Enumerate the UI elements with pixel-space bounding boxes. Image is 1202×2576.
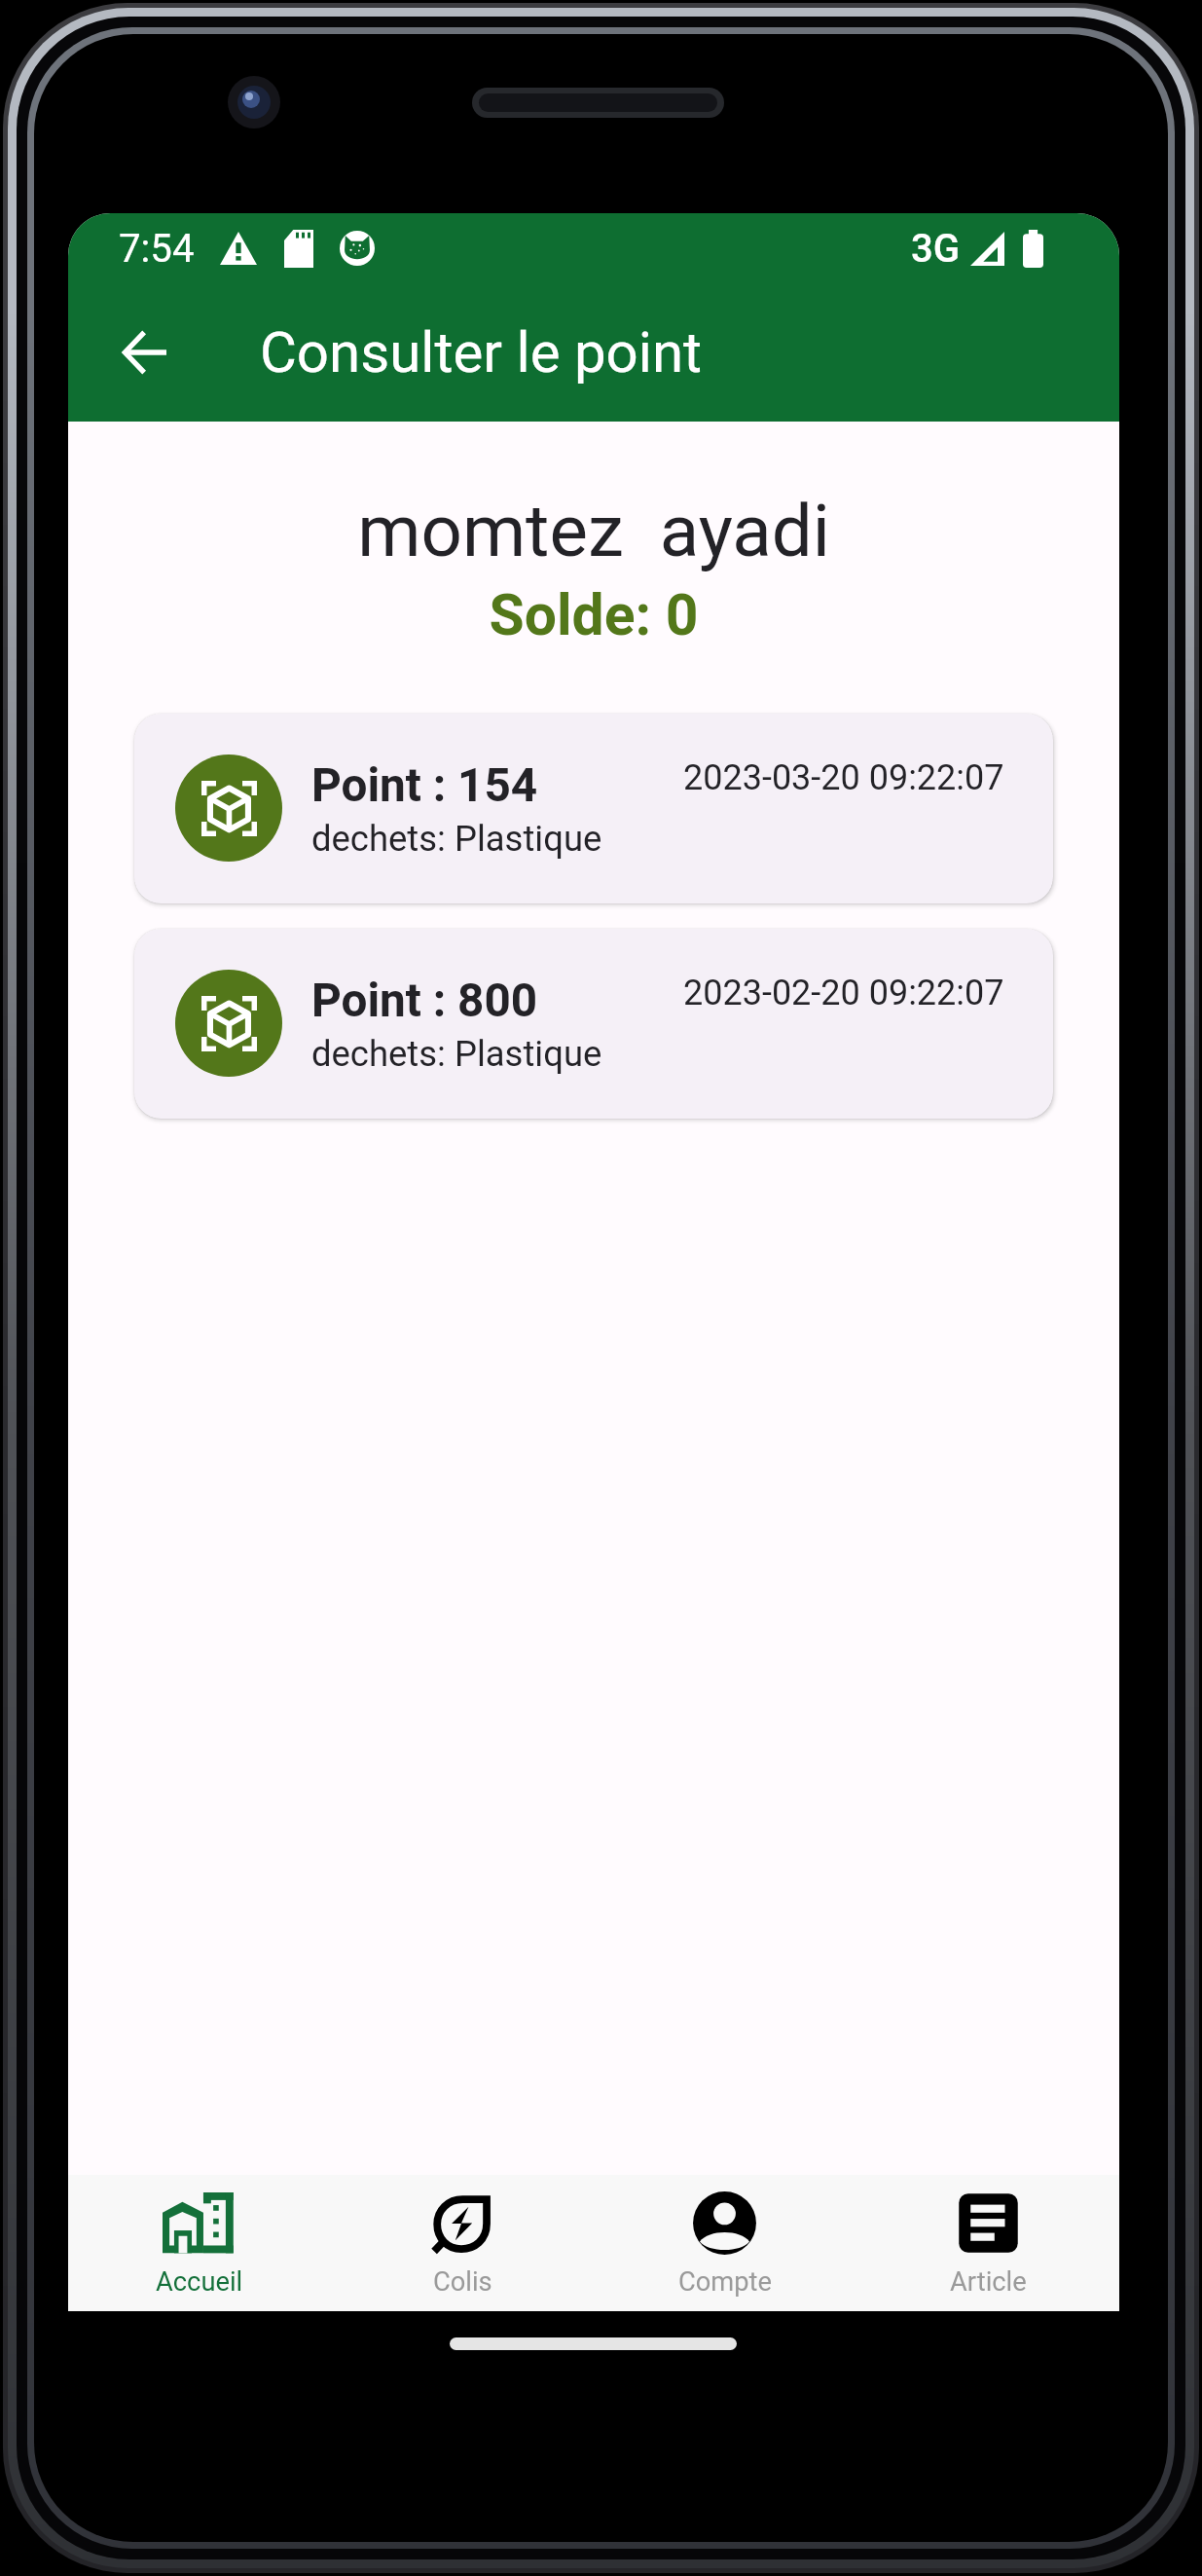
staticText: Solde: 0 (68, 581, 1119, 648)
staticText: dechets: Plastique (311, 818, 602, 860)
button[interactable]: Compte (594, 2175, 856, 2311)
button[interactable]: Accueil (68, 2175, 331, 2311)
button[interactable]: Point : 154 (134, 714, 1053, 903)
staticText: 2023-03-20 09:22:07 (683, 757, 1004, 798)
staticText: Colis (433, 2266, 492, 2298)
button[interactable]: Back (87, 294, 203, 411)
staticText: momtez ayadi (68, 489, 1119, 573)
staticText: 2023-02-20 09:22:07 (683, 973, 1004, 1013)
staticText: Accueil (156, 2266, 243, 2298)
button[interactable]: Article (856, 2175, 1119, 2311)
staticText: Compte (678, 2266, 773, 2298)
button[interactable]: Colis (331, 2175, 594, 2311)
staticText: Consulter le point (260, 319, 703, 386)
staticText: dechets: Plastique (311, 1033, 602, 1075)
staticText: Article (950, 2266, 1027, 2298)
staticText: Point : 800 (311, 974, 538, 1028)
staticText: 7:54 (119, 226, 195, 272)
button[interactable]: Point : 800 (134, 929, 1053, 1119)
staticText: 3G (911, 226, 961, 272)
staticText: Point : 154 (311, 758, 538, 813)
